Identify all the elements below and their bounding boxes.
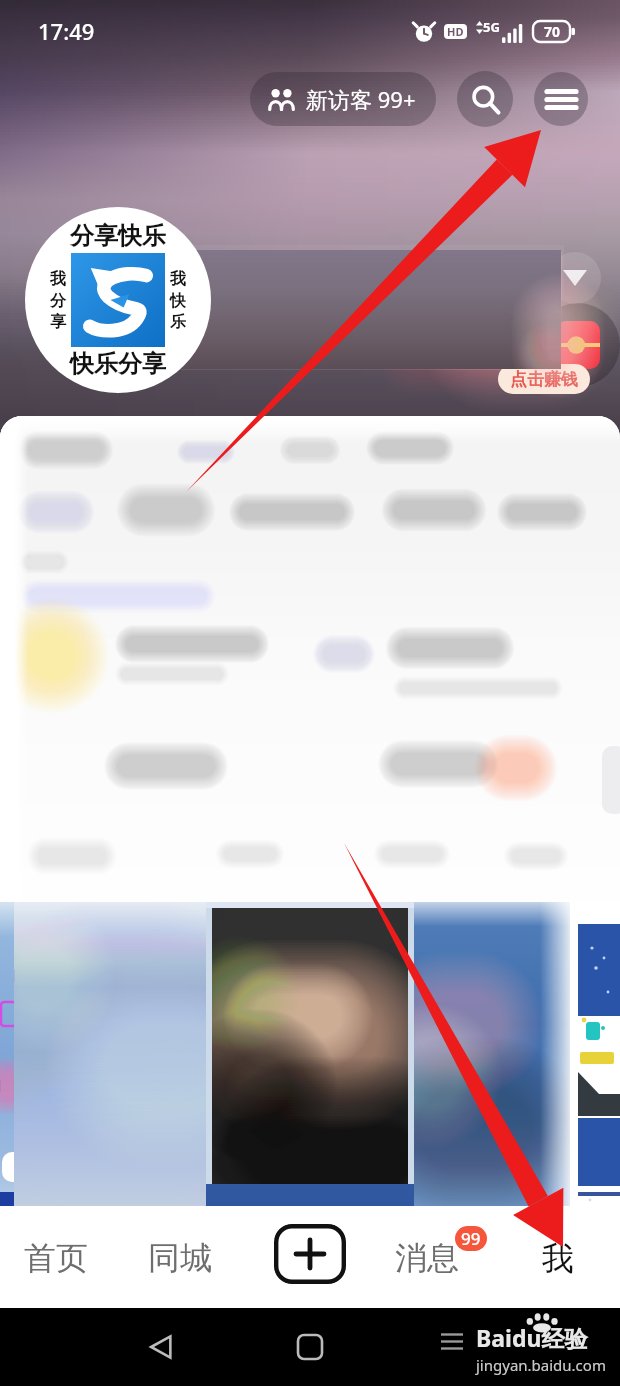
staticText: 我 — [542, 1238, 574, 1278]
staticText: 新访客 99+ — [306, 84, 416, 114]
other: Recents — [441, 1333, 463, 1350]
staticText: 点击赚钱 — [510, 369, 578, 390]
other: Home — [298, 1335, 322, 1359]
staticText: HD — [447, 24, 464, 39]
staticText: 5G — [483, 18, 500, 36]
staticText: jingyan.baidu.com — [476, 1355, 606, 1375]
button[interactable]: Profile avatar — [25, 207, 211, 393]
button[interactable]: 点击赚钱 — [498, 364, 590, 394]
staticText: 17:49 — [38, 16, 95, 46]
other: Back — [148, 1334, 174, 1360]
button[interactable]: 新访客 99+ — [250, 72, 436, 126]
button[interactable]: Collapse — [549, 252, 601, 304]
button[interactable] — [0, 900, 620, 1208]
button[interactable]: Search — [457, 71, 513, 127]
button[interactable]: 同城 — [130, 1208, 230, 1308]
button[interactable]: Menu — [534, 72, 588, 126]
button[interactable]: Create post — [274, 1224, 346, 1284]
button[interactable]: 首页 — [6, 1208, 106, 1308]
staticText: 分享快乐 — [70, 221, 166, 251]
staticText: 消息 — [395, 1238, 459, 1278]
staticText: 同城 — [148, 1238, 212, 1278]
staticText: 70 — [544, 22, 561, 41]
staticText: 快乐分享 — [70, 349, 166, 379]
staticText: 99 — [461, 1227, 481, 1250]
staticText: 我 快 乐 — [170, 269, 186, 331]
staticText: Baidu经验 — [476, 1322, 588, 1353]
staticText: 我 分 享 — [50, 269, 66, 331]
staticText: 首页 — [24, 1238, 88, 1278]
button[interactable]: 消息 — [386, 1208, 496, 1308]
button[interactable]: Earn money — [536, 303, 620, 387]
button[interactable]: 我 — [526, 1208, 590, 1308]
